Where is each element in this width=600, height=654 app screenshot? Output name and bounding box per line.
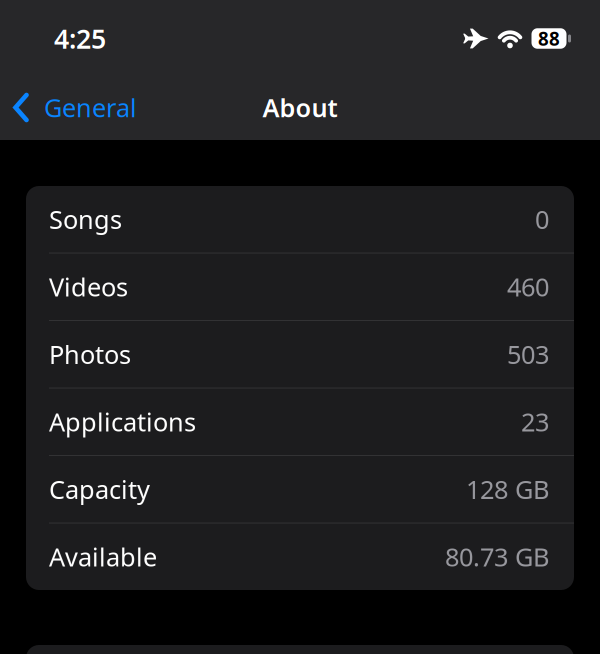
- staticText: General: [44, 91, 137, 124]
- staticText: Available: [49, 540, 157, 573]
- staticText: Capacity: [49, 472, 150, 506]
- button[interactable]: General: [13, 91, 137, 124]
- staticText: 128 GB: [466, 472, 549, 506]
- staticText: 460: [507, 270, 549, 303]
- staticText: 4:25: [54, 21, 106, 56]
- staticText: 0: [535, 202, 549, 236]
- staticText: Photos: [49, 337, 131, 371]
- staticText: 503: [507, 337, 549, 371]
- staticText: 80.73 GB: [445, 540, 549, 573]
- staticText: Applications: [49, 405, 196, 438]
- staticText: About: [262, 91, 337, 124]
- staticText: 23: [521, 405, 549, 438]
- staticText: 88: [538, 26, 560, 51]
- staticText: Songs: [49, 202, 122, 236]
- staticText: Videos: [49, 270, 128, 303]
